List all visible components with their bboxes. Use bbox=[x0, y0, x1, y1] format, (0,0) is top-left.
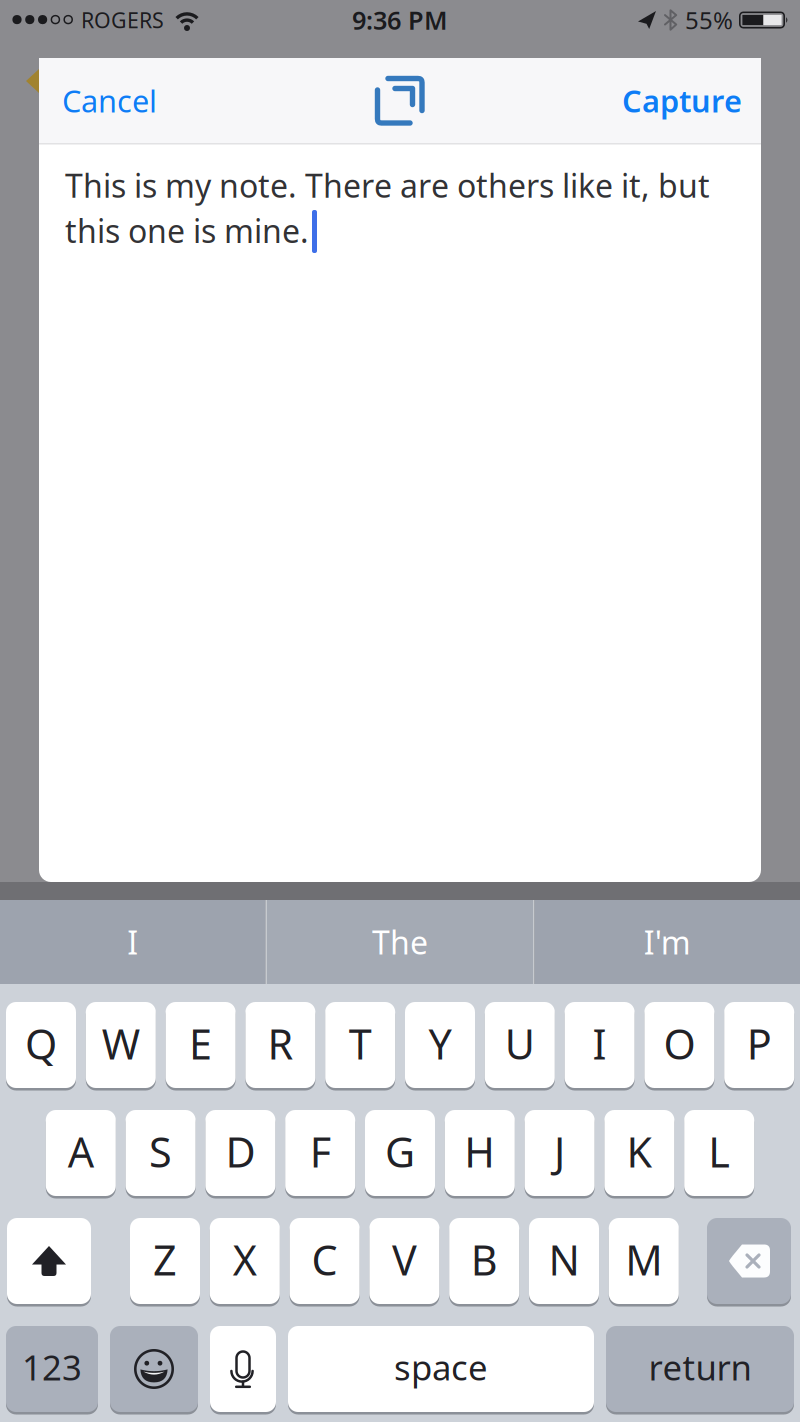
staticText: W bbox=[102, 1016, 140, 1071]
staticText: M bbox=[625, 1232, 662, 1287]
button[interactable]: J bbox=[525, 1110, 595, 1196]
button[interactable]: A bbox=[46, 1110, 116, 1196]
staticText: space bbox=[394, 1344, 488, 1390]
button[interactable]: R bbox=[245, 1002, 315, 1088]
staticText: F bbox=[310, 1124, 331, 1179]
button[interactable]: Cancel bbox=[62, 80, 157, 121]
button[interactable]: F bbox=[285, 1110, 355, 1196]
button[interactable] bbox=[110, 1326, 198, 1412]
staticText: V bbox=[392, 1232, 417, 1287]
staticText: J bbox=[554, 1124, 565, 1179]
staticText: Q bbox=[25, 1016, 57, 1071]
staticText: Z bbox=[153, 1232, 177, 1287]
staticText: H bbox=[464, 1124, 495, 1179]
button[interactable]: Q bbox=[6, 1002, 76, 1088]
button[interactable]: W bbox=[86, 1002, 156, 1088]
button[interactable]: T bbox=[325, 1002, 395, 1088]
staticText: X bbox=[233, 1232, 257, 1287]
staticText: N bbox=[548, 1232, 579, 1287]
button[interactable]: V bbox=[369, 1218, 439, 1304]
staticText: A bbox=[68, 1124, 94, 1179]
staticText: C bbox=[312, 1232, 338, 1287]
staticText: B bbox=[471, 1232, 498, 1287]
staticText: U bbox=[505, 1016, 535, 1071]
staticText: G bbox=[385, 1124, 415, 1179]
staticText: 9:36 PM bbox=[352, 3, 448, 37]
staticText: D bbox=[225, 1124, 255, 1179]
button[interactable]: U bbox=[485, 1002, 555, 1088]
staticText: ROGERS bbox=[81, 6, 164, 34]
staticText: 123 bbox=[22, 1344, 82, 1390]
staticText: I'm bbox=[644, 921, 691, 963]
staticText: I bbox=[127, 921, 138, 963]
button[interactable] bbox=[7, 1218, 91, 1304]
staticText: Capture bbox=[622, 80, 742, 121]
button[interactable] bbox=[373, 72, 427, 128]
button[interactable]: B bbox=[449, 1218, 519, 1304]
staticText: This is my note. There are others like i… bbox=[65, 164, 710, 206]
staticText: Cancel bbox=[62, 80, 157, 121]
button[interactable]: L bbox=[684, 1110, 754, 1196]
button[interactable]: Capture bbox=[622, 80, 742, 121]
button[interactable]: Y bbox=[405, 1002, 475, 1088]
staticText: this one is mine. bbox=[65, 209, 309, 252]
staticText: E bbox=[189, 1016, 212, 1071]
button[interactable] bbox=[707, 1218, 791, 1304]
button[interactable]: Z bbox=[130, 1218, 200, 1304]
staticText: K bbox=[626, 1124, 652, 1179]
button[interactable]: M bbox=[609, 1218, 679, 1304]
button[interactable]: P bbox=[724, 1002, 794, 1088]
button[interactable]: The bbox=[267, 900, 533, 984]
button[interactable]: D bbox=[205, 1110, 275, 1196]
button[interactable]: I'm bbox=[534, 900, 800, 984]
staticText: The bbox=[372, 921, 428, 963]
button[interactable]: return bbox=[606, 1326, 794, 1412]
button[interactable]: C bbox=[290, 1218, 360, 1304]
button[interactable]: E bbox=[166, 1002, 236, 1088]
staticText: P bbox=[747, 1016, 772, 1071]
button[interactable]: O bbox=[644, 1002, 714, 1088]
staticText: I bbox=[593, 1016, 607, 1071]
staticText: O bbox=[663, 1016, 695, 1071]
button[interactable]: H bbox=[445, 1110, 515, 1196]
button[interactable]: G bbox=[365, 1110, 435, 1196]
button[interactable]: I bbox=[0, 900, 265, 984]
staticText: 55% bbox=[685, 4, 733, 36]
staticText: Y bbox=[428, 1016, 451, 1071]
staticText: L bbox=[708, 1124, 730, 1179]
button[interactable]: K bbox=[604, 1110, 674, 1196]
button[interactable]: S bbox=[126, 1110, 196, 1196]
button[interactable]: X bbox=[210, 1218, 280, 1304]
staticText: S bbox=[149, 1124, 172, 1179]
staticText: R bbox=[267, 1016, 293, 1071]
button[interactable] bbox=[210, 1326, 276, 1412]
button[interactable]: N bbox=[529, 1218, 599, 1304]
staticText: return bbox=[648, 1344, 751, 1390]
button[interactable]: space bbox=[288, 1326, 594, 1412]
button[interactable]: 123 bbox=[6, 1326, 98, 1412]
staticText: T bbox=[349, 1016, 372, 1071]
button[interactable]: I bbox=[565, 1002, 635, 1088]
